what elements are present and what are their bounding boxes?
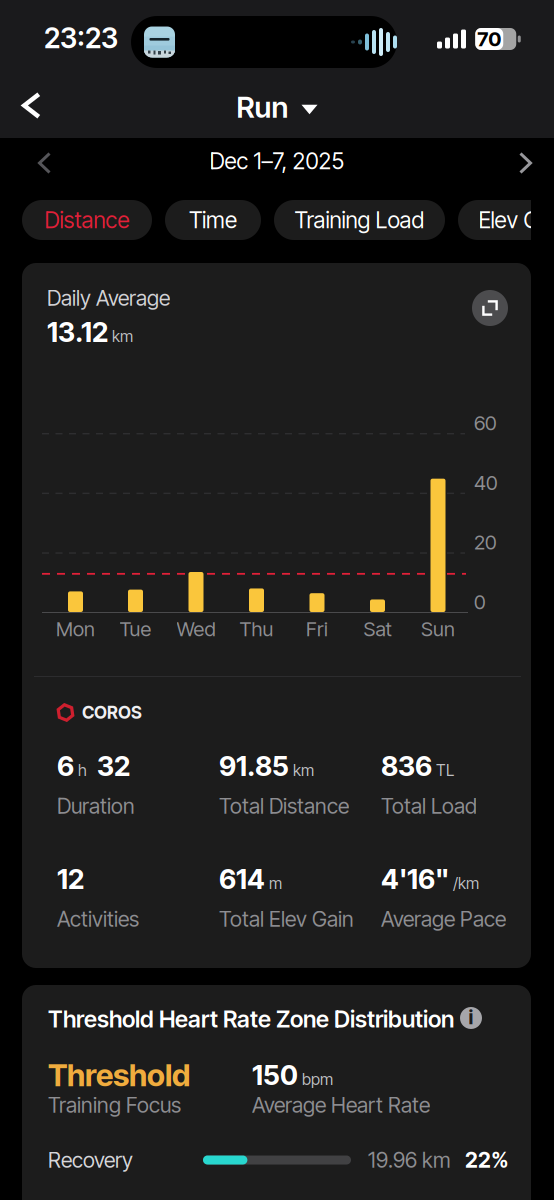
staticText: 614 — [219, 862, 265, 896]
button[interactable]: Next week — [497, 140, 554, 186]
button[interactable]: Information — [460, 1007, 482, 1029]
staticText: 13.12 — [47, 315, 108, 349]
staticText: 150 — [252, 1058, 298, 1092]
staticText: bpm — [298, 1069, 333, 1089]
button[interactable]: Training Load — [274, 200, 445, 240]
staticText: 23:23 — [44, 21, 118, 55]
staticText: Fri — [306, 617, 328, 641]
button[interactable]: Back — [2, 74, 61, 137]
staticText: Recovery — [48, 1147, 133, 1173]
staticText: 32 — [87, 749, 130, 783]
button[interactable]: Previous week — [16, 140, 73, 186]
staticText: h — [74, 760, 87, 780]
staticText: i — [468, 1005, 473, 1029]
staticText: /km — [449, 873, 479, 893]
staticText: 70 — [477, 27, 501, 51]
staticText: km — [289, 760, 314, 780]
staticText: Training Focus — [48, 1092, 181, 1118]
staticText: Wed — [176, 617, 215, 641]
staticText: 4'16" — [381, 862, 449, 896]
staticText: Training Load — [294, 206, 424, 234]
staticText: Tue — [119, 617, 151, 641]
button[interactable]: Expand chart — [472, 290, 508, 326]
staticText: Total Distance — [219, 793, 349, 819]
staticText: Thu — [239, 617, 273, 641]
staticText: Daily Average — [47, 285, 170, 311]
staticText: m — [265, 873, 282, 893]
staticText: Total Elev Gain — [219, 906, 354, 932]
staticText: Elev Gain — [478, 206, 554, 234]
staticText: 20 — [474, 530, 497, 554]
staticText: 6 — [57, 749, 74, 783]
staticText: 0 — [474, 590, 486, 614]
staticText: 40 — [474, 471, 498, 495]
staticText: Activities — [57, 906, 139, 932]
staticText: Average Heart Rate — [252, 1092, 430, 1118]
staticText: Average Pace — [381, 906, 506, 932]
staticText: 60 — [474, 411, 497, 435]
staticText: 22% — [465, 1147, 509, 1173]
staticText: Threshold — [48, 1056, 190, 1093]
staticText: Sun — [421, 617, 455, 641]
staticText: Mon — [56, 617, 95, 641]
staticText: Distance — [44, 206, 129, 234]
staticText: 12 — [57, 862, 84, 896]
staticText: COROS — [82, 702, 142, 723]
staticText: Threshold Heart Rate Zone Distribution — [48, 1005, 454, 1033]
button[interactable]: Time — [165, 200, 261, 240]
staticText: km — [108, 326, 133, 346]
staticText: Total Load — [381, 793, 477, 819]
staticText: 91.85 — [219, 749, 289, 783]
staticText: Dec 1–7, 2025 — [209, 147, 344, 175]
button[interactable]: Distance — [22, 200, 152, 240]
staticText: Run — [236, 89, 288, 125]
staticText: Sat — [363, 617, 391, 641]
staticText: TL — [432, 760, 454, 780]
button[interactable]: Elev Gain — [458, 200, 554, 240]
staticText: Time — [189, 206, 237, 234]
staticText: 19.96 km — [368, 1147, 451, 1173]
staticText: Duration — [57, 793, 135, 819]
staticText: 836 — [381, 749, 432, 783]
button[interactable]: Run — [222, 77, 331, 137]
